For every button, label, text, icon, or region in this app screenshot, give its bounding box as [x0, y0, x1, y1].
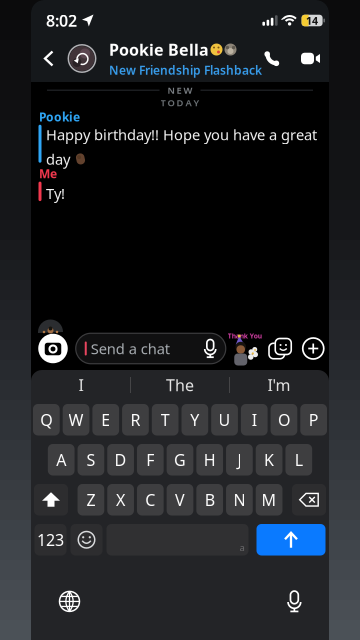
button[interactable]: A: [48, 444, 75, 475]
button[interactable]: G: [167, 444, 193, 475]
button[interactable]: Next keyboard: [59, 591, 80, 612]
staticText: Happy birthday!! Hope you have a great: [46, 125, 317, 144]
staticText: Pookie: [39, 109, 80, 125]
staticText: Send a chat: [91, 339, 170, 358]
staticText: L: [295, 449, 303, 470]
button[interactable]: Q: [33, 404, 60, 435]
button[interactable]: Birthday sticker: [230, 332, 261, 365]
button[interactable]: D: [107, 444, 134, 475]
button[interactable]: S: [78, 444, 104, 475]
button[interactable]: W: [63, 404, 89, 435]
button[interactable]: Flashback: [68, 44, 96, 72]
staticText: day: [46, 149, 70, 169]
staticText: E: [101, 409, 110, 430]
button[interactable]: E: [92, 404, 119, 435]
staticText: W: [69, 409, 84, 430]
button[interactable]: M: [256, 484, 282, 515]
staticText: I: [252, 409, 257, 430]
button[interactable]: Stickers: [268, 337, 293, 360]
button[interactable]: T: [152, 404, 178, 435]
staticText: T O D A Y: [160, 96, 199, 109]
button[interactable]: More: [303, 338, 324, 359]
button[interactable]: Video call: [301, 53, 320, 64]
button[interactable]: O: [271, 404, 297, 435]
staticText: 123: [37, 529, 64, 550]
staticText: Z: [86, 489, 95, 510]
button[interactable]: The: [131, 372, 229, 398]
staticText: 8:02: [46, 10, 77, 31]
staticText: D: [115, 449, 127, 470]
button[interactable]: Camera: [38, 334, 68, 363]
button[interactable]: Z: [78, 484, 104, 515]
staticText: 14: [306, 13, 318, 28]
staticText: P: [309, 409, 319, 430]
staticText: N: [233, 489, 245, 510]
staticText: The: [166, 374, 194, 396]
button[interactable]: Send: [256, 524, 325, 555]
button[interactable]: P: [300, 404, 327, 435]
button[interactable]: Y: [181, 404, 208, 435]
staticText: J: [237, 449, 241, 470]
staticText: H: [204, 449, 216, 470]
button[interactable]: Shift: [34, 484, 68, 515]
staticText: C: [145, 489, 155, 510]
staticText: M: [262, 489, 277, 510]
button[interactable]: B: [196, 484, 223, 515]
button[interactable]: Emoji: [70, 524, 102, 555]
staticText: G: [174, 449, 186, 470]
staticText: B: [205, 489, 215, 510]
staticText: Pookie Bella: [109, 39, 209, 60]
button[interactable]: Call: [263, 49, 281, 67]
button[interactable]: L: [285, 444, 312, 475]
button[interactable]: N: [226, 484, 253, 515]
button[interactable]: J: [226, 444, 253, 475]
staticText: A: [56, 449, 66, 470]
staticText: X: [116, 489, 125, 510]
button[interactable]: H: [196, 444, 223, 475]
staticText: O: [278, 409, 290, 430]
staticText: K: [264, 449, 274, 470]
staticText: N E W: [167, 84, 192, 96]
button[interactable]: I: [241, 404, 268, 435]
button[interactable]: R: [122, 404, 149, 435]
staticText: I'm: [267, 374, 290, 396]
button[interactable]: Delete: [292, 484, 326, 515]
staticText: Y: [190, 409, 199, 430]
button[interactable]: C: [137, 484, 164, 515]
staticText: Thank You: [228, 332, 262, 340]
button[interactable]: F: [137, 444, 164, 475]
staticText: I: [78, 374, 83, 396]
button[interactable]: Dictation: [286, 590, 303, 612]
staticText: Me: [39, 166, 57, 182]
button[interactable]: U: [211, 404, 238, 435]
staticText: V: [175, 489, 185, 510]
button[interactable]: I'm: [230, 372, 328, 398]
staticText: a: [239, 541, 244, 553]
staticText: R: [130, 409, 140, 430]
button[interactable]: Send a chat: [76, 333, 226, 364]
staticText: T: [161, 409, 170, 430]
staticText: Q: [40, 409, 52, 430]
button[interactable]: Back: [37, 43, 61, 73]
staticText: F: [146, 449, 154, 470]
staticText: New Friendship Flashback: [109, 62, 262, 78]
staticText: S: [86, 449, 95, 470]
button[interactable]: I: [32, 372, 130, 398]
staticText: U: [219, 409, 231, 430]
staticText: Ty!: [46, 184, 65, 203]
button[interactable]: V: [167, 484, 193, 515]
button[interactable]: 123: [34, 524, 66, 555]
button[interactable]: K: [256, 444, 282, 475]
button[interactable]: X: [107, 484, 134, 515]
